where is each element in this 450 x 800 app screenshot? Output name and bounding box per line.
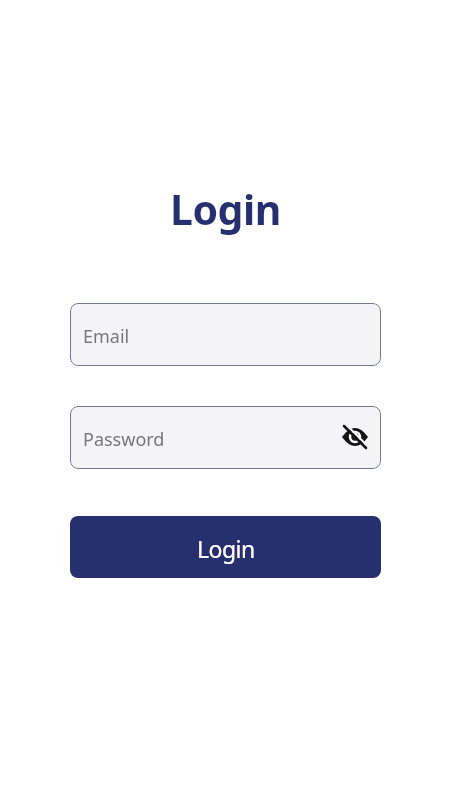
staticText: Email bbox=[83, 324, 130, 349]
staticText: Password bbox=[83, 427, 165, 452]
button[interactable]: Password bbox=[70, 406, 381, 469]
button[interactable]: Login bbox=[70, 516, 381, 578]
button[interactable] bbox=[339, 421, 371, 453]
button[interactable]: Email bbox=[70, 303, 381, 366]
staticText: Login bbox=[170, 181, 281, 237]
staticText: Login bbox=[197, 533, 255, 564]
